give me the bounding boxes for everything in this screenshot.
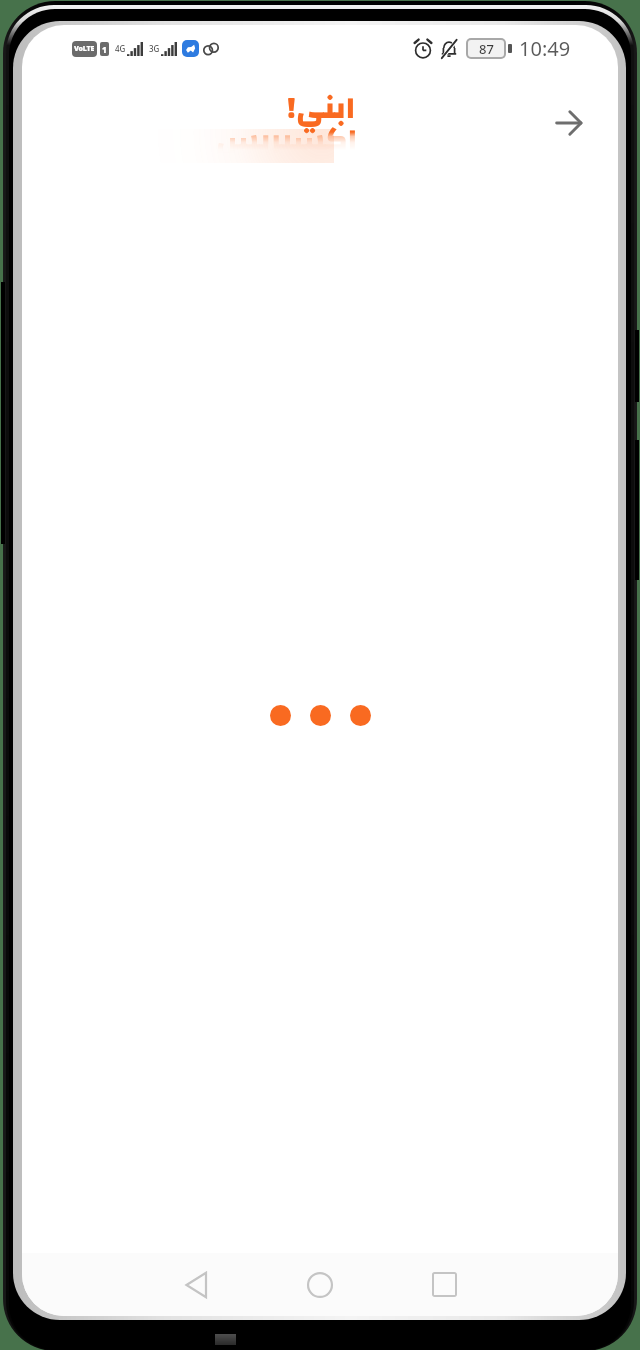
button[interactable]: Recents [409,1253,479,1316]
staticText: 4G [115,43,126,54]
staticText: 1 [102,44,107,55]
staticText: 3G [149,43,160,54]
staticText: 87 [479,40,494,57]
staticText: !ابني [216,80,355,137]
staticText: 10:49 [519,35,571,62]
button[interactable]: Back [161,1253,231,1316]
button[interactable]: Home [285,1253,355,1316]
button[interactable]: Next [546,100,592,146]
other: Ibni Express logo [22,71,618,179]
staticText: اكسبريس [216,112,355,169]
staticText: VoLTE [74,44,95,54]
